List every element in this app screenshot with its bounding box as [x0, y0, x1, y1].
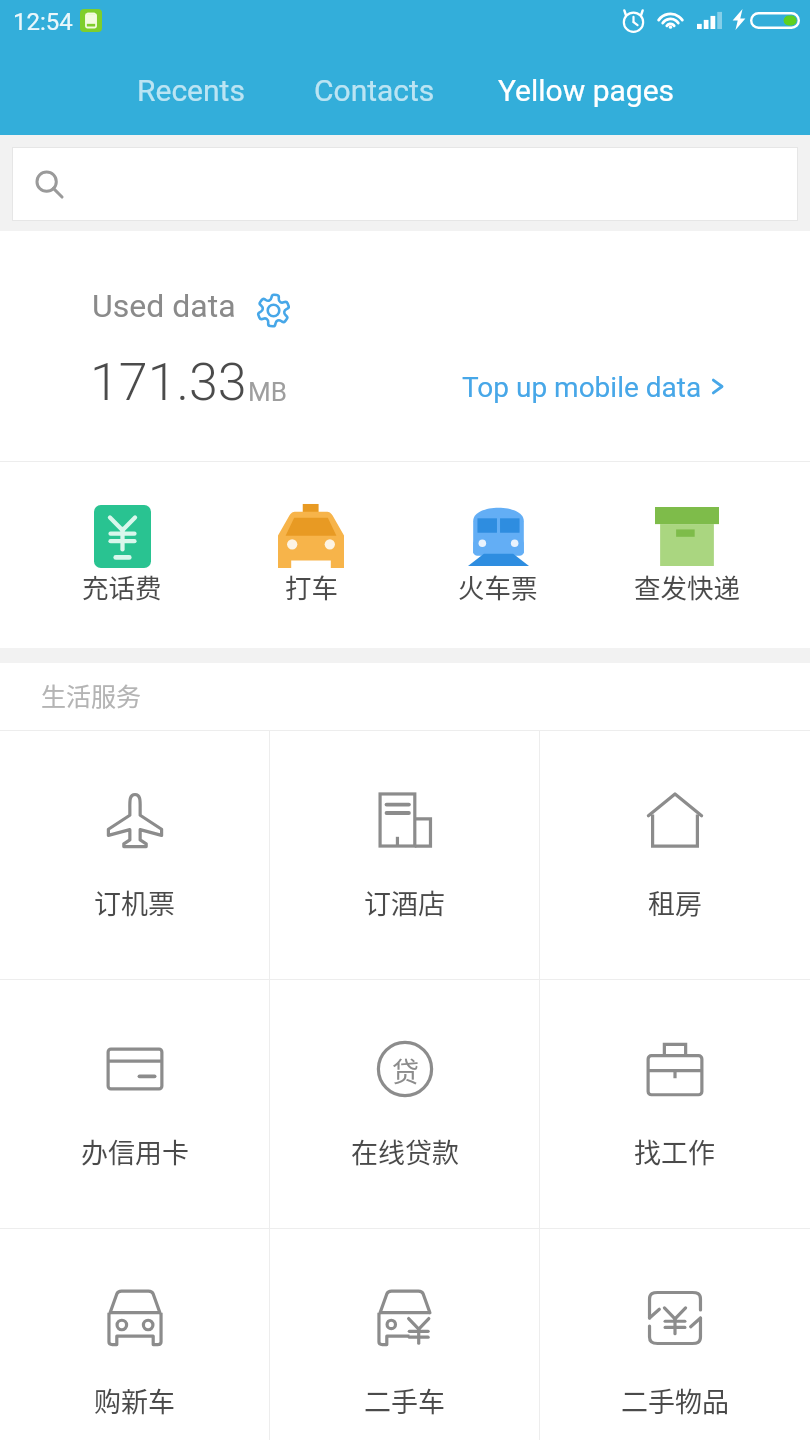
- button[interactable]: 充话费: [28, 462, 216, 648]
- button[interactable]: 二手车: [270, 1229, 539, 1440]
- staticText: 充话费: [82, 567, 162, 605]
- button[interactable]: 订机票: [0, 731, 269, 979]
- staticText: 打车: [285, 567, 338, 605]
- button[interactable]: 打车: [217, 462, 405, 648]
- staticText: Top up mobile data: [462, 371, 702, 404]
- staticText: MB: [248, 377, 287, 407]
- button[interactable]: 租房: [540, 731, 809, 979]
- staticText: 在线贷款: [351, 1132, 459, 1171]
- button[interactable]: Data settings: [254, 291, 292, 329]
- button[interactable]: 购新车: [0, 1229, 269, 1440]
- staticText: 二手车: [364, 1381, 445, 1420]
- button[interactable]: 贷: [270, 980, 539, 1228]
- button[interactable]: 订酒店: [270, 731, 539, 979]
- staticText: 查发快递: [634, 567, 740, 605]
- button[interactable]: 找工作: [540, 980, 809, 1228]
- staticText: 办信用卡: [81, 1132, 189, 1171]
- staticText: 购新车: [94, 1381, 175, 1420]
- button[interactable]: 查发快递: [593, 462, 781, 648]
- staticText: 贷: [392, 1051, 419, 1090]
- staticText: Used data: [92, 287, 236, 325]
- button[interactable]: Contacts: [284, 46, 464, 135]
- staticText: 171.33: [90, 352, 247, 413]
- staticText: Contacts: [314, 73, 435, 108]
- button[interactable]: Search: [13, 148, 797, 220]
- button[interactable]: 办信用卡: [0, 980, 269, 1228]
- button[interactable]: 二手物品: [540, 1229, 809, 1440]
- button[interactable]: 火车票: [404, 462, 592, 648]
- staticText: 租房: [648, 883, 702, 922]
- staticText: Recents: [137, 73, 245, 108]
- staticText: 12:54: [13, 8, 73, 36]
- staticText: 生活服务: [41, 677, 142, 713]
- staticText: 火车票: [458, 567, 538, 605]
- button[interactable]: Top up mobile data: [462, 371, 727, 404]
- button[interactable]: Yellow pages: [496, 46, 676, 135]
- staticText: 找工作: [634, 1132, 715, 1171]
- staticText: 二手物品: [621, 1381, 729, 1420]
- staticText: 订酒店: [364, 883, 445, 922]
- button[interactable]: Recents: [101, 46, 281, 135]
- staticText: 订机票: [94, 883, 175, 922]
- staticText: Yellow pages: [498, 73, 675, 108]
